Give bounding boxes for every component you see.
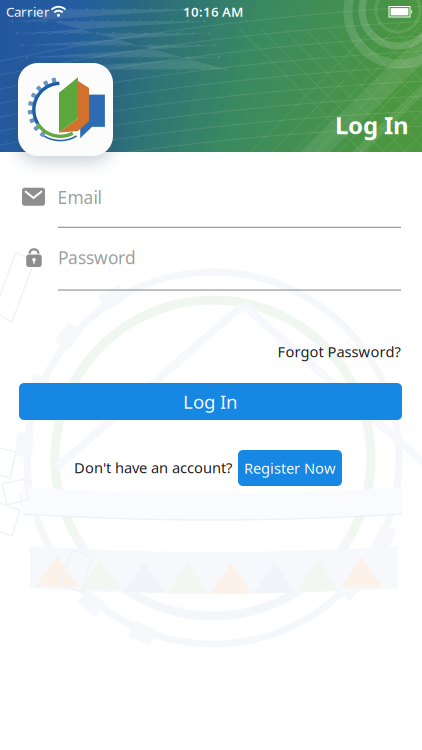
staticText: 10:16 AM — [183, 3, 243, 20]
button[interactable]: Password — [19, 238, 402, 291]
button[interactable]: Log In — [19, 383, 402, 420]
staticText: Email — [57, 186, 101, 209]
button[interactable]: Register Now — [238, 450, 342, 486]
staticText: Log In — [335, 109, 409, 141]
button[interactable]: Email — [19, 178, 402, 228]
button[interactable]: Forgot Password? — [277, 342, 400, 361]
staticText: Password — [58, 246, 136, 269]
staticText: Forgot Password? — [277, 342, 400, 361]
staticText: Log In — [183, 389, 238, 414]
staticText: Carrier — [6, 3, 50, 20]
staticText: Don't have an account? — [74, 458, 232, 477]
staticText: Register Now — [244, 458, 336, 478]
